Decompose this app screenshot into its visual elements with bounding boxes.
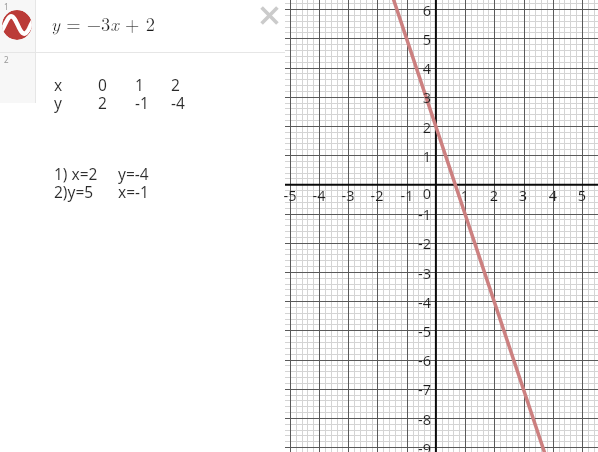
- staticText: 1: [407, 146, 431, 166]
- staticText: -5: [407, 321, 431, 341]
- staticText: 2: [171, 74, 180, 95]
- staticText: 6: [407, 0, 431, 20]
- staticText: 2: [4, 54, 9, 65]
- staticText: x=-1: [118, 181, 149, 202]
- staticText: 5: [570, 185, 594, 205]
- staticText: 0: [98, 74, 135, 95]
- staticText: 2: [407, 117, 431, 137]
- staticText: -3: [336, 185, 360, 205]
- staticText: -1: [395, 185, 419, 205]
- staticText: -2: [365, 185, 389, 205]
- staticText: 4: [541, 185, 565, 205]
- staticText: 2: [482, 185, 506, 205]
- staticText: 2)y=5: [54, 181, 118, 202]
- staticText: 3: [407, 87, 431, 107]
- staticText: -1: [135, 92, 171, 113]
- staticText: -2: [407, 233, 431, 253]
- staticText: 5: [407, 29, 431, 49]
- staticText: 4: [407, 58, 431, 78]
- staticText: -3: [407, 263, 431, 283]
- staticText: -8: [407, 409, 431, 429]
- staticText: -4: [407, 292, 431, 312]
- staticText: -4: [171, 92, 185, 113]
- staticText: y = −3x + 2: [51, 10, 155, 36]
- staticText: -6: [407, 350, 431, 370]
- staticText: 0: [415, 183, 439, 203]
- staticText: -4: [307, 185, 331, 205]
- staticText: -1: [407, 204, 431, 224]
- staticText: 1) x=2: [54, 163, 118, 184]
- staticText: x: [54, 74, 98, 95]
- staticText: -5: [278, 185, 302, 205]
- staticText: 1: [135, 74, 171, 95]
- staticText: y=-4: [118, 163, 149, 184]
- staticText: 3: [511, 185, 535, 205]
- button[interactable]: Delete expression: [258, 4, 281, 27]
- staticText: -9: [407, 438, 431, 452]
- staticText: 1: [4, 1, 9, 12]
- button[interactable]: Toggle graph visibility: [2, 10, 32, 40]
- staticText: y: [54, 92, 98, 113]
- staticText: 2: [98, 92, 135, 113]
- staticText: 1: [453, 185, 477, 205]
- staticText: -7: [407, 379, 431, 399]
